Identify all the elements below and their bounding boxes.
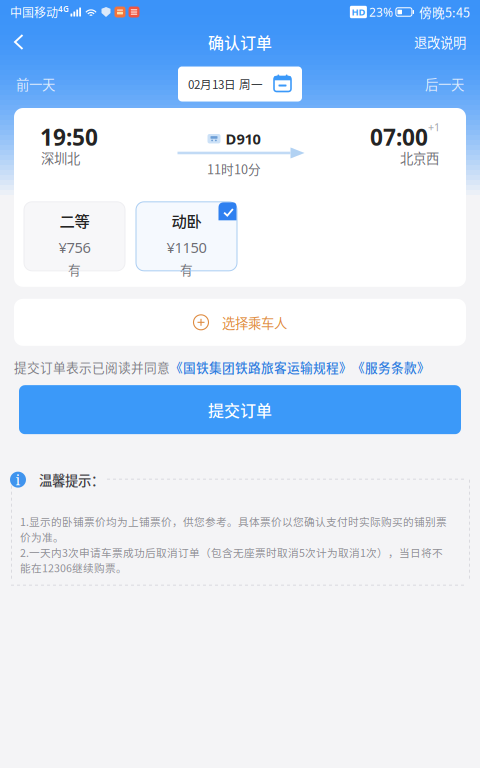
button[interactable]: 选择乘车人 [14,299,466,346]
staticText: 提交订单 [208,398,272,421]
staticText: 退改说明 [414,32,466,52]
staticText: 2.一天内3次申请车票成功后取消订单（包含无座票时取消5次计为取消1次），当日将… [20,545,443,575]
staticText: +1 [428,120,440,134]
button[interactable]: 后一天 [394,66,480,101]
staticText: 选择乘车人 [222,313,287,332]
staticText: 傍晚5:45 [419,3,470,21]
staticText: 动卧 [171,209,201,231]
staticText: 北京西 [400,148,439,167]
staticText: 02月13日 周一 [188,76,263,92]
staticText: 二等 [59,209,89,231]
staticText: 19:50 [40,122,98,152]
button[interactable]: 前一天 [0,66,86,101]
button[interactable]: 提交订单 [19,385,461,434]
staticText: i [15,470,20,490]
staticText: 后一天 [425,74,464,94]
staticText: 4G [58,4,69,14]
staticText: 《国铁集团铁路旅客运输规程》《服务条款》 [170,358,430,376]
staticText: 中国移动 [10,3,58,21]
staticText: 前一天 [16,74,55,94]
staticText: HD [351,6,365,18]
staticText: 有 [180,260,193,278]
staticText: 07:00 [370,122,428,152]
staticText: 温馨提示： [39,470,104,489]
staticText: 确认订单 [208,30,272,54]
staticText: ¥1150 [166,237,206,257]
button[interactable]: 二等 [24,202,125,271]
staticText: D910 [225,129,260,148]
staticText: 11时10分 [207,159,261,178]
button[interactable]: 02月13日 周一 [178,66,302,101]
staticText: 有 [68,260,81,278]
staticText: 23% [369,4,393,20]
button[interactable]: 退改说明 [400,22,480,62]
staticText: ¥756 [58,237,90,257]
button[interactable]: 返回 [0,25,36,59]
staticText: 1.显示的卧铺票价均为上铺票价，供您参考。具体票价以您确认支付时实际购买的铺别票… [20,514,447,545]
staticText: 深圳北 [41,148,80,167]
staticText: 提交订单表示已阅读并同意 [14,358,170,376]
button[interactable]: 动卧 [136,202,237,271]
